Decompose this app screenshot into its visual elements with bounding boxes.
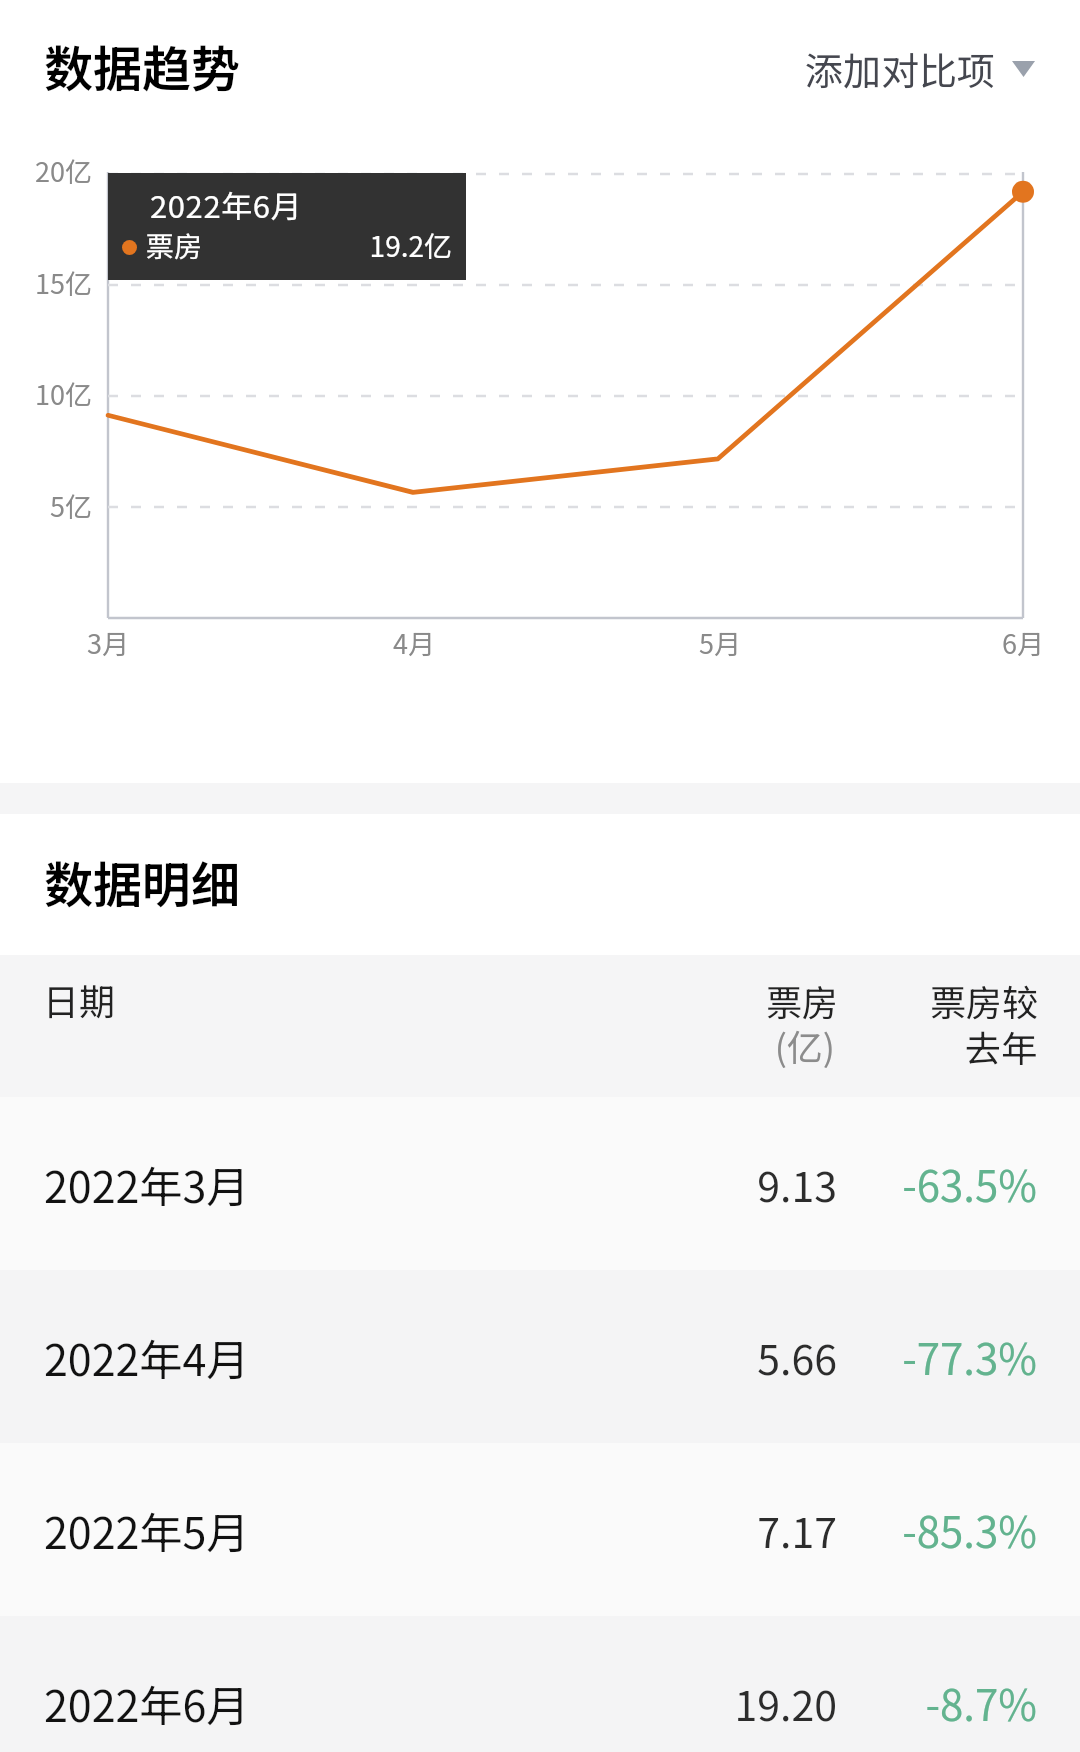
staticText: 2022年6月 (150, 182, 303, 227)
staticText: 7.17 (0, 1500, 837, 1559)
button[interactable]: 2022年5月 (0, 1443, 1080, 1616)
staticText: 票房 (0, 974, 838, 1026)
staticText: 4月 (354, 623, 474, 662)
button[interactable]: 2022年3月 (0, 1097, 1080, 1270)
staticText: -85.3% (0, 1499, 1037, 1560)
staticText: 2022年3月 (44, 1153, 250, 1215)
staticText: 5月 (660, 623, 780, 662)
staticText: 2022年6月 (44, 1672, 250, 1734)
staticText: 6月 (963, 623, 1080, 662)
staticText: 9.13 (0, 1154, 837, 1213)
staticText: 10亿 (0, 374, 92, 413)
staticText: 19.20 (0, 1673, 837, 1732)
staticText: 添加对比项 (805, 41, 996, 96)
staticText: 3月 (48, 623, 168, 662)
staticText: -63.5% (0, 1153, 1037, 1214)
staticText: 20亿 (0, 151, 92, 190)
staticText: 5亿 (0, 486, 92, 525)
staticText: 5.66 (0, 1327, 837, 1386)
staticText: 19.2亿 (338, 225, 452, 266)
staticText: -8.7% (0, 1672, 1037, 1733)
staticText: 数据趋势 (44, 30, 241, 101)
button[interactable]: 2022年4月 (0, 1270, 1080, 1443)
staticText: 数据明细 (44, 846, 241, 917)
staticText: 15亿 (0, 263, 92, 302)
staticText: 2022年5月 (44, 1499, 250, 1561)
staticText: 日期 (43, 973, 116, 1025)
staticText: -77.3% (0, 1326, 1037, 1387)
staticText: 2022年4月 (44, 1326, 250, 1388)
staticText: 票房 (146, 225, 203, 266)
button[interactable]: 2022年6月 (0, 1616, 1080, 1752)
staticText: 票房较 (0, 974, 1038, 1026)
staticText: 去年 (0, 1020, 1037, 1072)
staticText: (亿) (0, 1019, 835, 1071)
button[interactable]: 添加对比项 (805, 41, 1035, 96)
